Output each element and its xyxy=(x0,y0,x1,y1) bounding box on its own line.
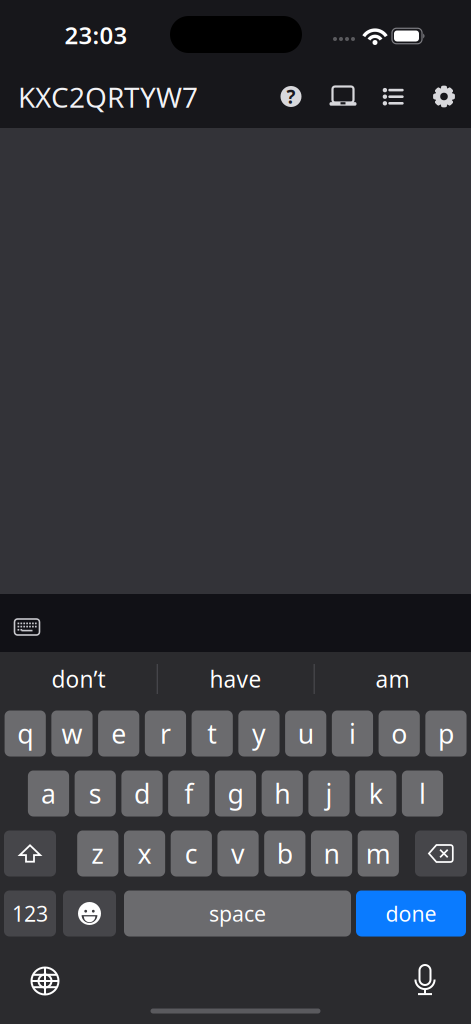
button[interactable]: b xyxy=(264,830,305,876)
staticText: h xyxy=(274,776,290,811)
button[interactable]: don’t xyxy=(3,656,153,702)
button[interactable]: x xyxy=(124,830,165,876)
button[interactable]: Delete xyxy=(415,830,467,876)
staticText: am xyxy=(375,664,409,694)
button[interactable]: q xyxy=(5,710,46,756)
staticText: don’t xyxy=(51,664,105,694)
button[interactable]: Hide keyboard xyxy=(7,609,47,645)
button[interactable]: z xyxy=(77,830,118,876)
button[interactable]: g xyxy=(215,770,256,816)
button[interactable]: y xyxy=(238,710,279,756)
button[interactable]: l xyxy=(402,770,443,816)
staticText: 23:03 xyxy=(64,19,127,51)
staticText: p xyxy=(438,716,454,751)
staticText: y xyxy=(252,716,266,751)
button[interactable]: space xyxy=(124,890,351,936)
staticText: a xyxy=(41,776,56,811)
button[interactable]: am xyxy=(317,656,467,702)
button[interactable]: j xyxy=(308,770,350,816)
staticText: done xyxy=(385,899,436,928)
staticText: 123 xyxy=(12,899,48,928)
staticText: d xyxy=(134,776,150,811)
staticText: f xyxy=(184,776,193,811)
staticText: e xyxy=(111,716,126,751)
button[interactable]: m xyxy=(358,830,399,876)
button[interactable]: k xyxy=(355,770,396,816)
button[interactable]: t xyxy=(192,710,233,756)
button[interactable]: a xyxy=(28,770,69,816)
button[interactable]: Session list xyxy=(382,87,403,105)
button[interactable]: Help xyxy=(280,86,301,107)
button[interactable]: h xyxy=(262,770,303,816)
button[interactable]: i xyxy=(332,710,373,756)
button[interactable]: Displays xyxy=(330,86,356,106)
staticText: o xyxy=(391,716,407,751)
button[interactable]: have xyxy=(160,656,310,702)
staticText: l xyxy=(419,776,426,811)
button[interactable]: d xyxy=(121,770,163,816)
staticText: u xyxy=(298,716,314,751)
staticText: r xyxy=(160,716,171,751)
staticText: t xyxy=(207,716,217,751)
button[interactable]: s xyxy=(75,770,116,816)
staticText: c xyxy=(185,836,198,871)
button[interactable]: p xyxy=(425,710,466,756)
button[interactable]: Shift xyxy=(4,830,56,876)
staticText: n xyxy=(324,836,340,871)
button[interactable]: r xyxy=(145,710,186,756)
staticText: s xyxy=(89,776,102,811)
staticText: m xyxy=(366,836,391,871)
staticText: v xyxy=(231,836,245,871)
staticText: ? xyxy=(286,84,295,109)
staticText: j xyxy=(325,776,332,811)
staticText: q xyxy=(17,716,33,751)
button[interactable]: e xyxy=(98,710,139,756)
staticText: have xyxy=(209,664,261,694)
button[interactable]: Next keyboard xyxy=(31,967,59,995)
staticText: k xyxy=(369,776,383,811)
staticText: z xyxy=(91,836,104,871)
staticText: w xyxy=(61,716,82,751)
button[interactable]: n xyxy=(311,830,352,876)
staticText: space xyxy=(209,899,266,928)
button[interactable]: c xyxy=(171,830,212,876)
button[interactable]: done xyxy=(356,890,466,936)
button[interactable]: v xyxy=(217,830,259,876)
button[interactable]: Dictate xyxy=(415,964,435,995)
button[interactable]: f xyxy=(168,770,209,816)
button[interactable]: u xyxy=(285,710,326,756)
staticText: x xyxy=(138,836,152,871)
button[interactable]: Settings xyxy=(433,85,455,107)
staticText: g xyxy=(227,776,243,811)
button[interactable]: o xyxy=(379,710,420,756)
button[interactable]: 123 xyxy=(4,890,56,936)
button[interactable]: Emoji xyxy=(63,890,116,936)
staticText: b xyxy=(277,836,293,871)
staticText: i xyxy=(349,716,356,751)
staticText: KXC2QRTYW7 xyxy=(18,78,198,116)
button[interactable]: w xyxy=(51,710,93,756)
